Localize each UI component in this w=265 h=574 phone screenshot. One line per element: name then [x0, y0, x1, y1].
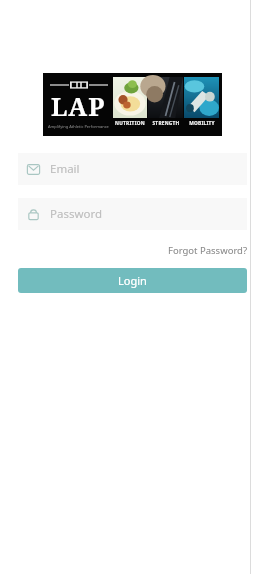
staticText: Password: [50, 206, 103, 222]
staticText: LAP: [51, 89, 106, 123]
button[interactable]: Login: [18, 268, 247, 293]
button[interactable]: Password field: [18, 198, 247, 230]
staticText: NUTRITION: [115, 120, 145, 127]
button[interactable]: Forgot Password?: [165, 241, 251, 260]
staticText: MOBILITY: [189, 120, 215, 127]
staticText: STRENGTH: [152, 120, 180, 127]
staticText: Amplifying Athletic Performance: [48, 124, 109, 129]
staticText: Email: [50, 161, 80, 177]
staticText: Login: [118, 273, 147, 288]
staticText: Forgot Password?: [168, 244, 248, 257]
button[interactable]: Email field: [18, 153, 247, 185]
